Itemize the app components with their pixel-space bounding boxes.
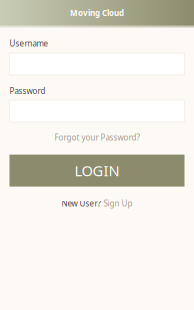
button[interactable]: Forgot your Password? bbox=[37, 131, 157, 144]
staticText: Forgot your Password? bbox=[54, 132, 139, 143]
button[interactable]: Password bbox=[9, 100, 184, 122]
button[interactable]: Username bbox=[9, 53, 184, 75]
staticText: Sign Up bbox=[103, 198, 132, 209]
staticText: LOGIN bbox=[74, 161, 119, 180]
staticText: Username bbox=[9, 38, 48, 49]
button[interactable]: LOGIN bbox=[9, 155, 184, 187]
button[interactable]: Sign Up bbox=[103, 198, 132, 209]
staticText: New User? bbox=[61, 198, 100, 209]
staticText: Moving Cloud bbox=[70, 7, 124, 18]
staticText: Password bbox=[9, 86, 45, 96]
